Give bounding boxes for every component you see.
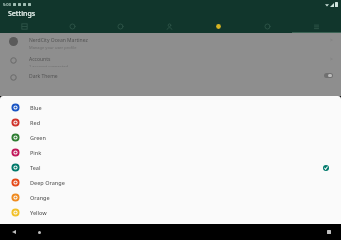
button[interactable]: Red (0, 115, 341, 130)
staticText: Dark Theme (29, 73, 58, 80)
button[interactable]: Pink (0, 145, 341, 160)
staticText: Blue (30, 104, 42, 111)
button[interactable]: NerdCity Ocean Martinez (9, 37, 333, 50)
button[interactable]: Accounts (9, 56, 333, 67)
staticText: NerdCity Ocean Martinez (29, 37, 88, 44)
button[interactable]: Back (10, 228, 18, 236)
button[interactable]: Privacy (243, 19, 292, 33)
button[interactable]: Green (0, 130, 341, 145)
staticText: Green (30, 134, 46, 141)
button[interactable]: General (0, 19, 48, 33)
staticText: Pink (30, 149, 42, 156)
button[interactable]: About (292, 19, 341, 33)
button[interactable]: Deep Orange (0, 175, 341, 190)
staticText: 5:00 (3, 2, 11, 7)
button[interactable]: Display (48, 19, 96, 33)
button[interactable]: Blue (0, 100, 341, 115)
button[interactable]: Recents (325, 228, 333, 236)
staticText: Orange (30, 194, 50, 201)
button[interactable]: Home (35, 228, 43, 236)
button[interactable]: Theme (194, 19, 243, 33)
staticText: Accounts (29, 56, 51, 63)
button[interactable]: Orange (0, 190, 341, 205)
staticText: Yellow (30, 209, 47, 216)
staticText: 1 account connected (29, 64, 68, 67)
staticText: Settings (8, 9, 36, 19)
button[interactable]: Teal (0, 160, 341, 175)
staticText: Red (30, 119, 41, 126)
button[interactable]: Yellow (0, 205, 341, 220)
staticText: Deep Orange (30, 179, 65, 186)
staticText: Manage your user profile (29, 45, 77, 50)
button[interactable]: Dark Theme (9, 73, 333, 84)
button[interactable]: Notifications (96, 19, 145, 33)
staticText: Teal (30, 164, 41, 171)
